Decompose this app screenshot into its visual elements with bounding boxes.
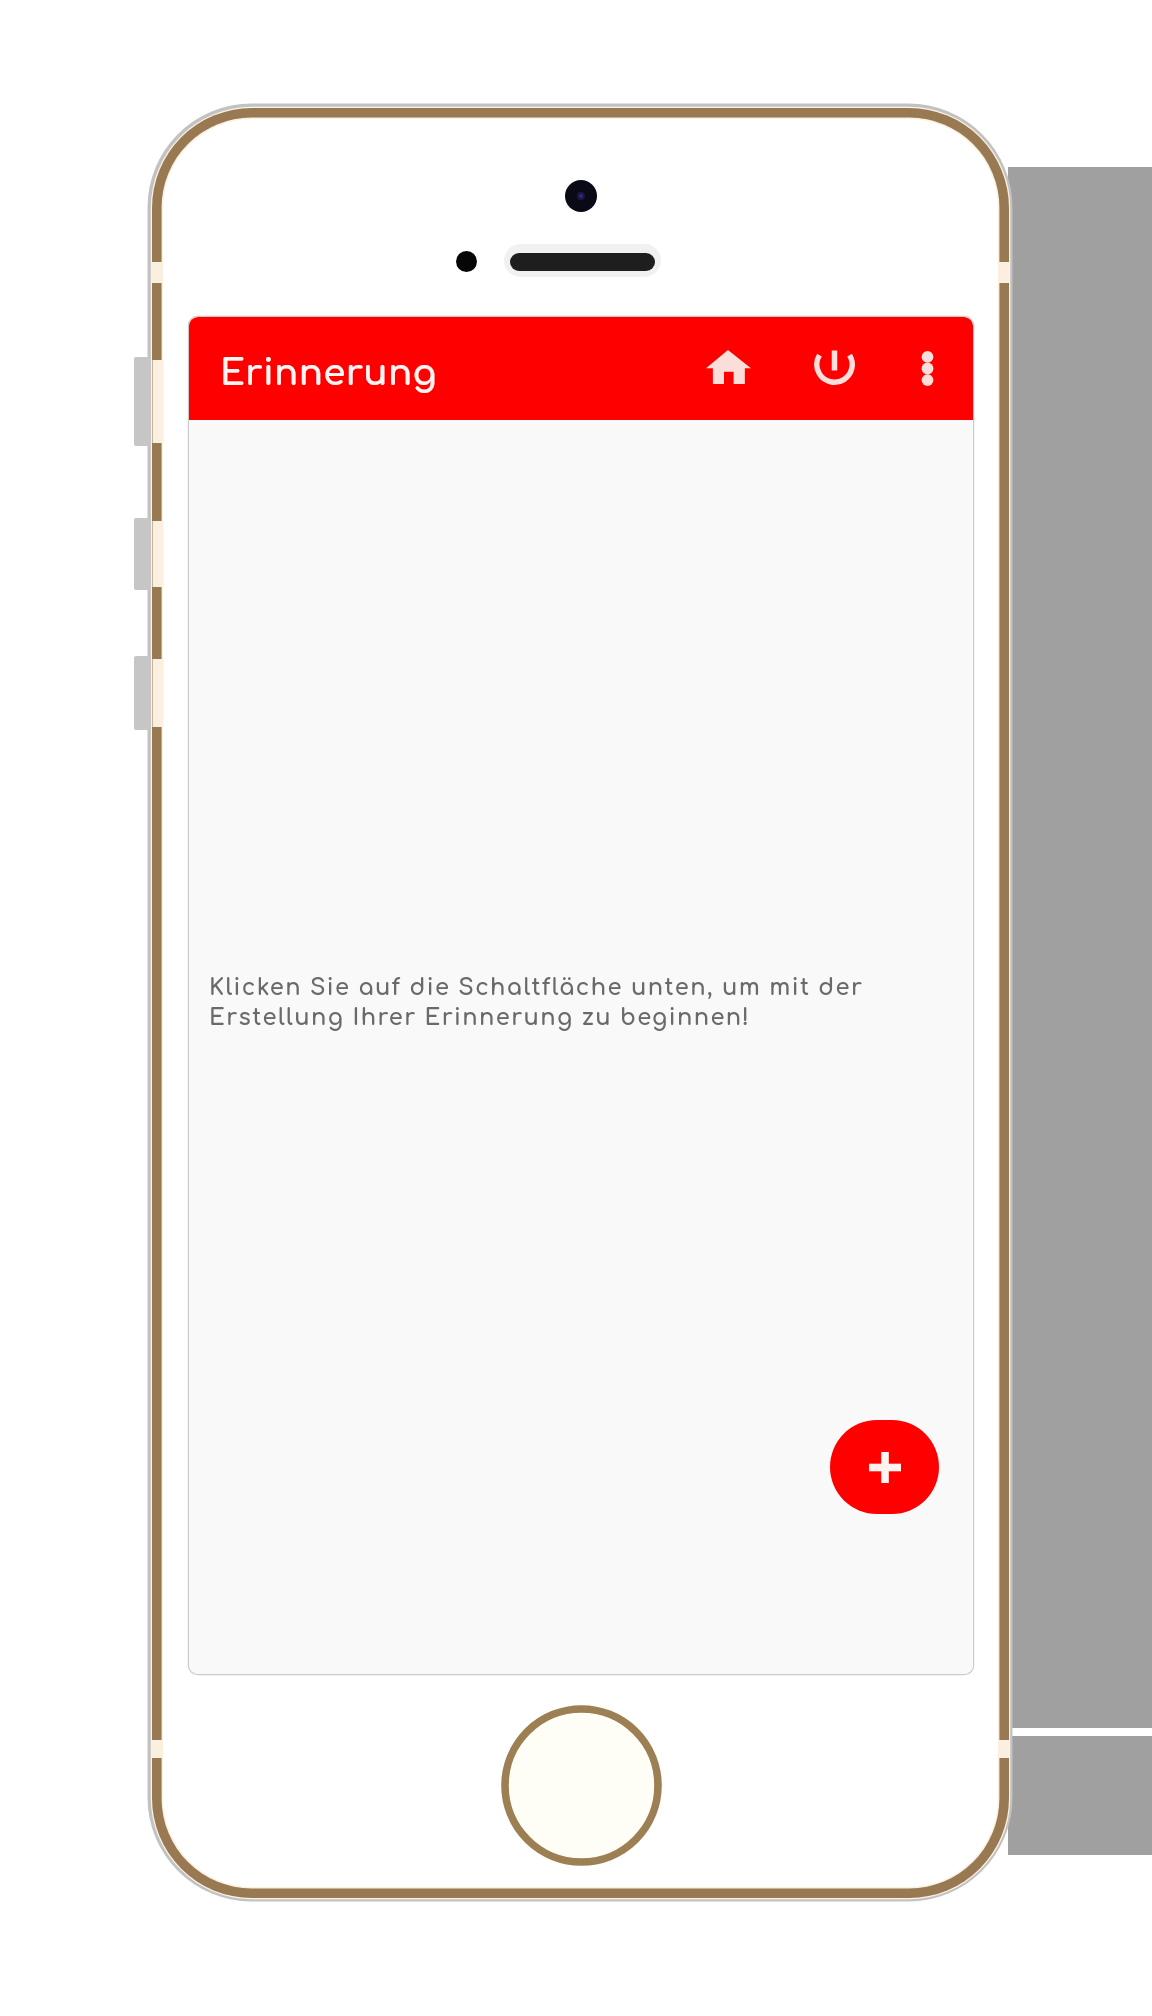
button[interactable]: More options [892,333,964,405]
button[interactable]: Add reminder [830,1420,939,1514]
staticText: Erinnerung [220,354,437,394]
button[interactable]: Home [692,333,764,405]
staticText: Klicken Sie auf die Schaltfläche unten, … [209,975,899,1031]
button[interactable]: Power [800,333,872,405]
button[interactable]: Home button [501,1705,662,1866]
